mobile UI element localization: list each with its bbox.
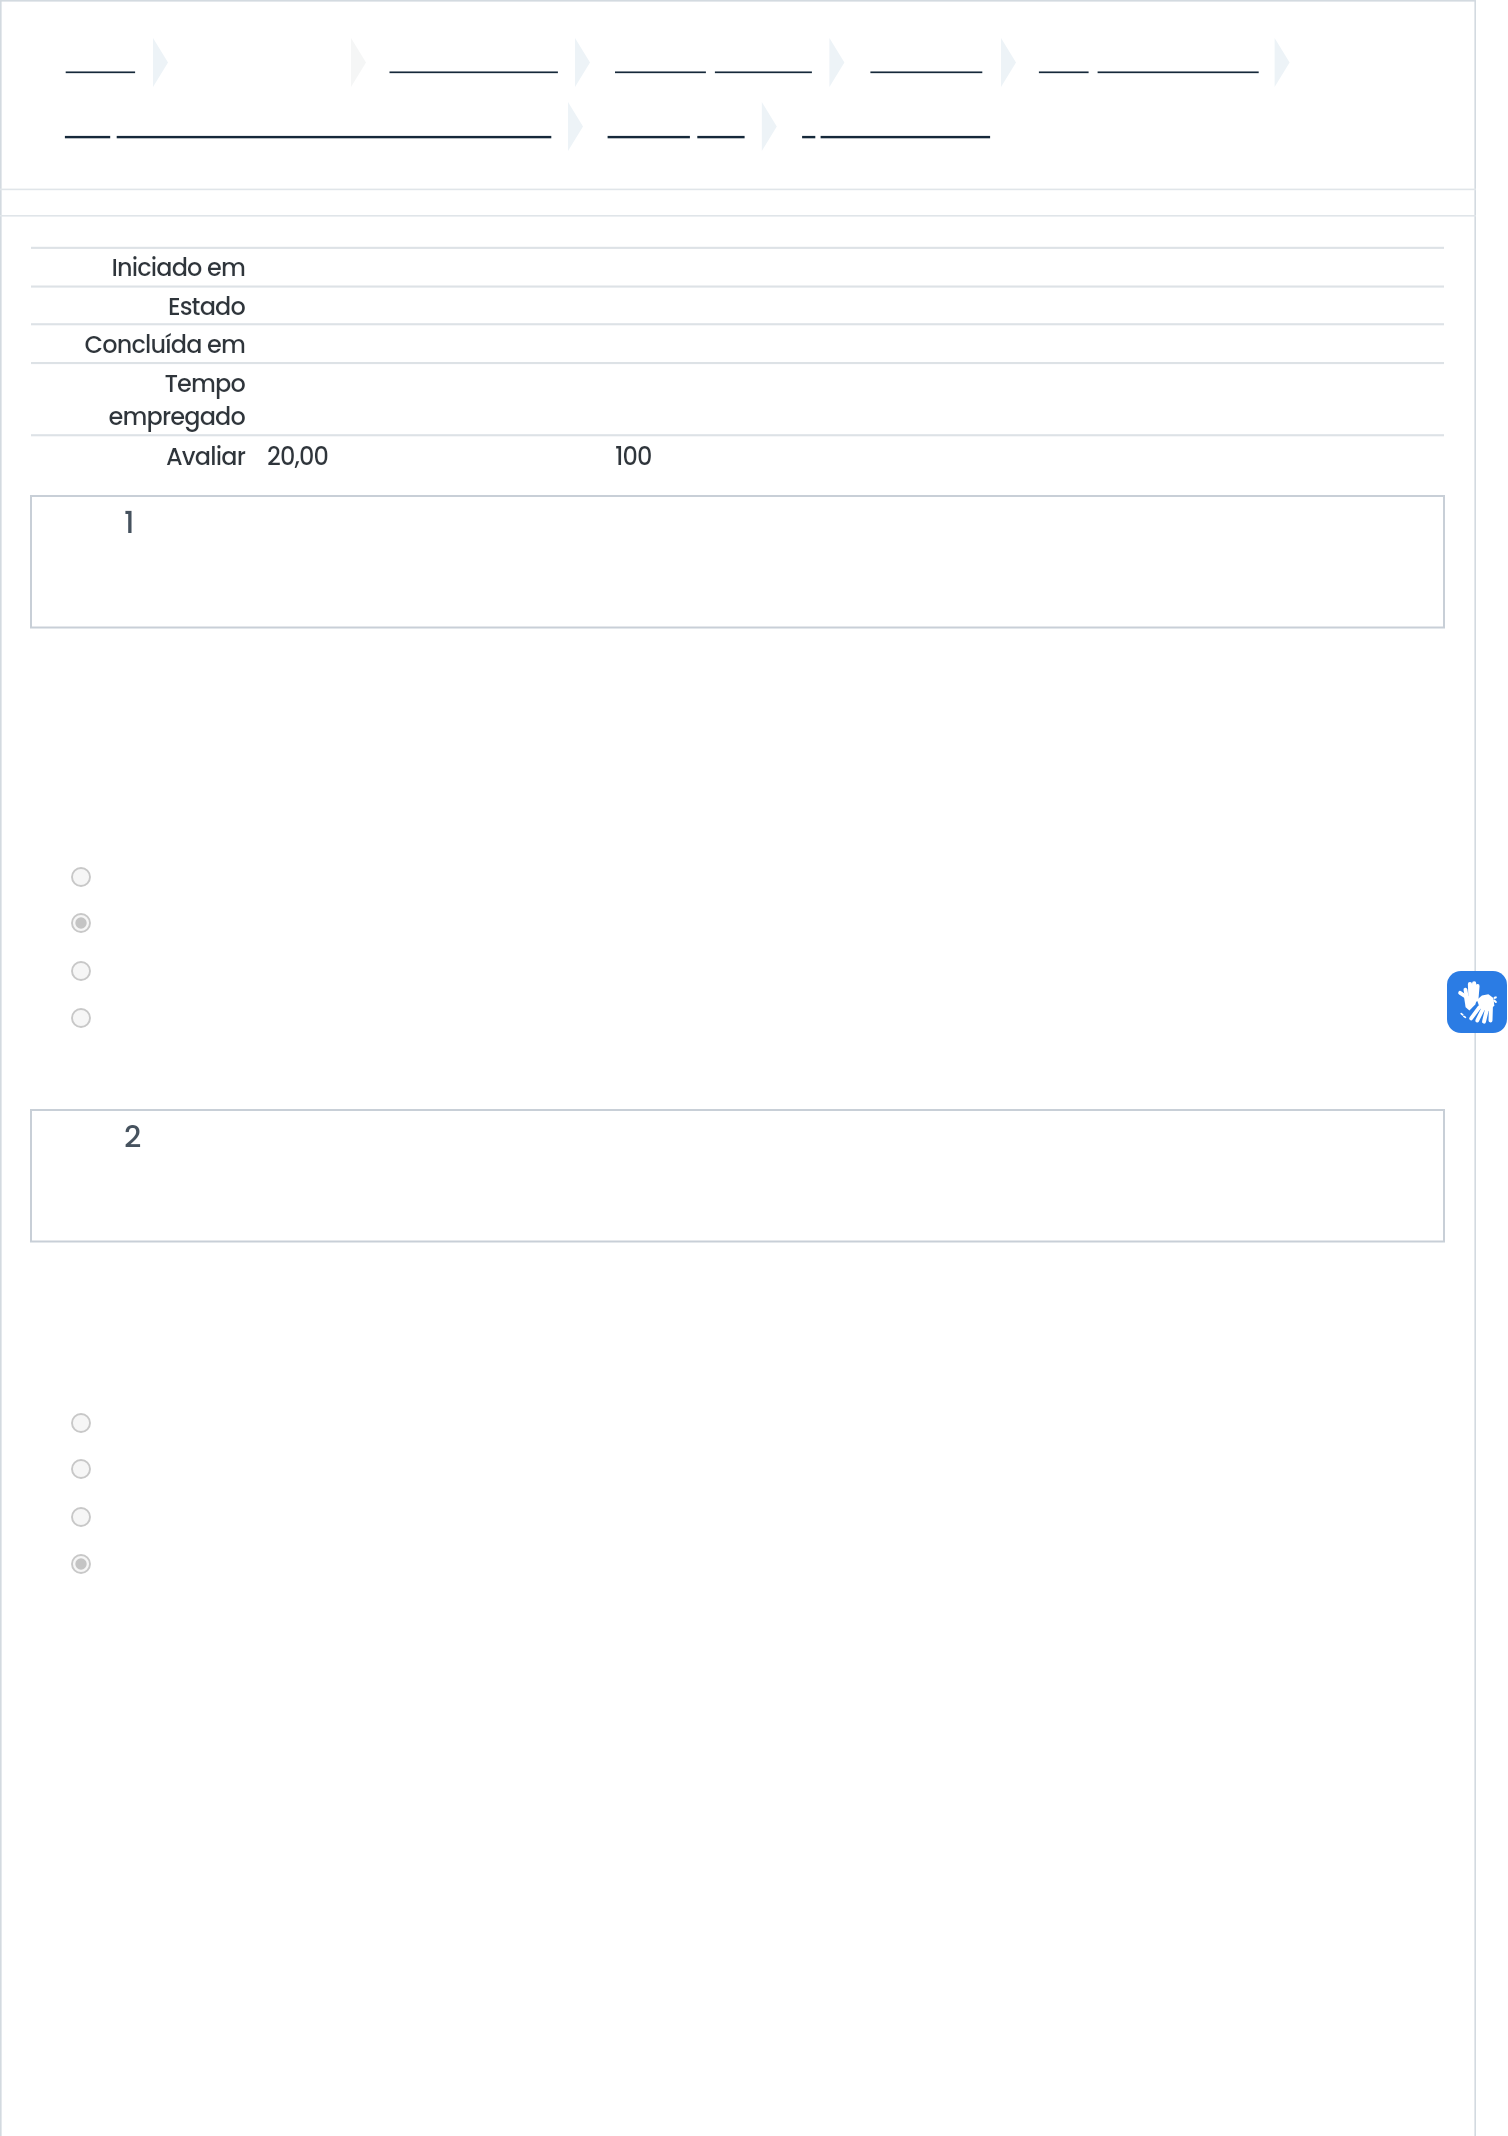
button[interactable]: Answer option bbox=[71, 1507, 91, 1527]
button[interactable]: Selected answer option bbox=[71, 913, 91, 933]
button[interactable]: Answer option bbox=[71, 867, 91, 887]
staticText: Iniciado em bbox=[0, 251, 245, 285]
button[interactable]: 2 bbox=[31, 1110, 1444, 1242]
staticText: Tempo empregado bbox=[0, 367, 245, 434]
staticText: 1 bbox=[124, 502, 135, 544]
staticText: 2 bbox=[124, 1116, 142, 1158]
button[interactable]: Answer option bbox=[71, 1413, 91, 1433]
button[interactable]: VLibras sign language accessibility bbox=[1447, 971, 1507, 1033]
staticText: Concluída em bbox=[0, 328, 245, 362]
staticText: Estado bbox=[0, 290, 245, 324]
button[interactable]: Answer option bbox=[71, 1008, 91, 1028]
staticText: Avaliar bbox=[0, 440, 245, 474]
button[interactable]: 1 bbox=[31, 496, 1444, 628]
button[interactable]: Answer option bbox=[71, 1459, 91, 1479]
staticText: 20,00 bbox=[267, 440, 329, 474]
staticText: 100 bbox=[615, 440, 652, 474]
button[interactable]: Answer option bbox=[71, 961, 91, 981]
button[interactable]: Selected answer option bbox=[71, 1554, 91, 1574]
